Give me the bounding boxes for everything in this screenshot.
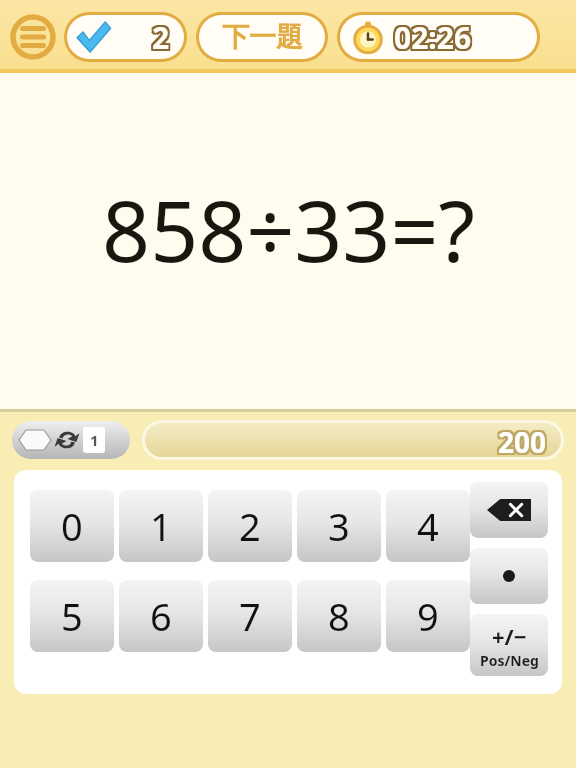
button[interactable]: 2 (208, 490, 292, 562)
button[interactable]: Backspace (470, 482, 548, 538)
button[interactable]: Menu (8, 12, 58, 62)
button[interactable]: 6 (119, 580, 203, 652)
staticText: 858÷33=? (102, 172, 475, 286)
staticText: 02:26 (392, 15, 470, 56)
staticText: 2 (150, 15, 168, 56)
staticText: 2 (154, 15, 172, 56)
button[interactable]: 2 (64, 12, 187, 62)
staticText: 9 (417, 590, 439, 642)
staticText: 下一題 (222, 20, 303, 54)
button[interactable]: 9 (386, 580, 470, 652)
staticText: 200 (496, 425, 545, 457)
staticText: 2 (152, 19, 170, 59)
staticText: 6 (150, 590, 172, 642)
staticText: 4 (417, 500, 439, 552)
staticText: 200 (500, 423, 549, 457)
staticText: 7 (239, 590, 261, 642)
staticText: 1 (90, 430, 99, 450)
staticText: 0 (61, 500, 83, 552)
button[interactable]: 8 (297, 580, 381, 652)
staticText: 2 (150, 19, 168, 59)
button[interactable]: 下一題 (196, 12, 328, 62)
staticText: 200 (498, 425, 547, 457)
button[interactable]: 7 (208, 580, 292, 652)
staticText: 200 (496, 423, 545, 457)
staticText: 02:26 (392, 19, 470, 59)
button[interactable]: 1 (119, 490, 203, 562)
button[interactable]: 3 (297, 490, 381, 562)
staticText: 02:26 (396, 17, 474, 58)
staticText: 1 (150, 500, 172, 552)
staticText: 2 (154, 17, 172, 58)
button[interactable]: +/− (470, 614, 548, 676)
button[interactable]: Swap answer mode (12, 421, 130, 459)
staticText: 2 (152, 17, 170, 58)
staticText: 200 (496, 423, 545, 455)
staticText: 8 (328, 590, 350, 642)
staticText: 02:26 (394, 19, 472, 59)
staticText: 200 (500, 423, 549, 455)
button[interactable]: 200 (145, 423, 561, 457)
staticText: 200 (498, 423, 547, 457)
staticText: 2 (239, 500, 261, 552)
staticText: Pos/Neg (480, 651, 539, 670)
button[interactable]: 4 (386, 490, 470, 562)
button[interactable]: 02:26 (337, 12, 540, 62)
staticText: 02:26 (396, 19, 474, 59)
staticText: 2 (154, 19, 172, 59)
button[interactable]: 0 (30, 490, 114, 562)
staticText: 2 (152, 15, 170, 56)
staticText: 02:26 (394, 17, 472, 58)
staticText: +/− (492, 621, 527, 651)
staticText: 2 (150, 17, 168, 58)
staticText: 200 (498, 423, 547, 455)
staticText: 02:26 (396, 15, 474, 56)
staticText: 5 (61, 590, 83, 642)
staticText: 3 (328, 500, 350, 552)
button[interactable]: Decimal point (470, 548, 548, 604)
staticText: 02:26 (394, 15, 472, 56)
staticText: 02:26 (392, 17, 470, 58)
button[interactable]: 5 (30, 580, 114, 652)
staticText: 200 (500, 425, 549, 457)
